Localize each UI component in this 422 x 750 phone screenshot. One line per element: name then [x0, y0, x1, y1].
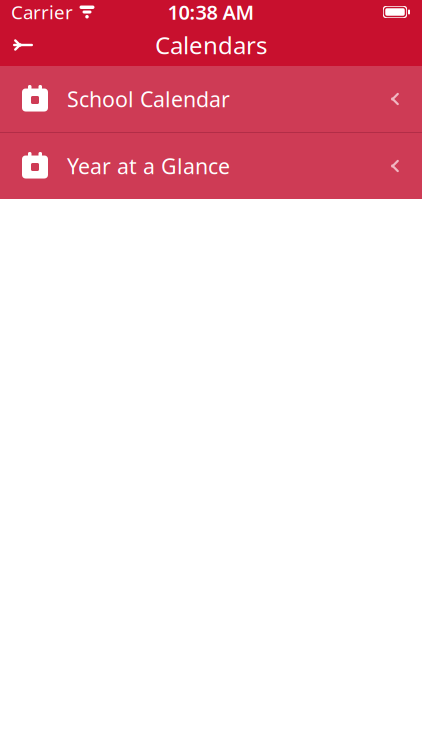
button[interactable]: Back	[0, 24, 46, 66]
staticText: Calendars	[155, 29, 267, 61]
staticText: Year at a Glance	[67, 152, 230, 180]
staticText: School Calendar	[67, 85, 230, 113]
button[interactable]: School Calendar	[0, 66, 422, 132]
staticText: 10:38 AM	[167, 0, 254, 25]
button[interactable]: Year at a Glance	[0, 133, 422, 199]
staticText: Carrier	[11, 0, 73, 24]
